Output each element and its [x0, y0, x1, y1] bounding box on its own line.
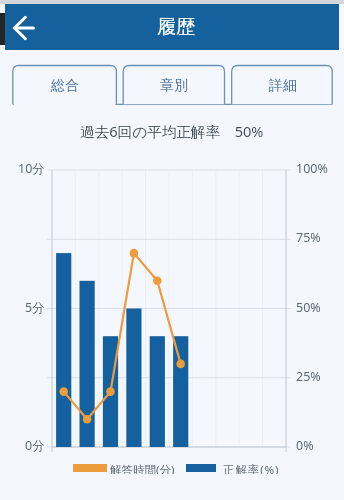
staticText: 5分 — [25, 299, 45, 315]
staticText: 50% — [296, 299, 321, 315]
button[interactable]: Back — [5, 9, 43, 47]
staticText: 正解率(%) — [223, 462, 280, 474]
staticText: 履歴 — [157, 15, 195, 39]
staticText: 0分 — [25, 437, 45, 453]
staticText: 詳細 — [269, 77, 297, 95]
staticText: 過去6回の平均正解率 50% — [80, 121, 264, 139]
staticText: 100% — [296, 160, 328, 176]
staticText: 25% — [296, 368, 321, 384]
staticText: 75% — [296, 229, 321, 245]
staticText: 10分 — [18, 160, 45, 176]
button[interactable]: 詳細 — [232, 66, 333, 105]
staticText: 解答時間(分) — [110, 462, 175, 474]
staticText: 0% — [296, 437, 314, 453]
button[interactable]: 総合 — [13, 66, 117, 105]
staticText: 総合 — [51, 77, 79, 95]
staticText: 章別 — [160, 77, 188, 95]
button[interactable]: 章別 — [123, 66, 224, 105]
